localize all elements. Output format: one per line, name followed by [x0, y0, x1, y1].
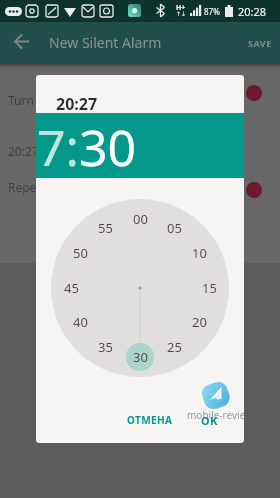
staticText: ОК	[201, 413, 219, 428]
staticText: 20:28	[238, 4, 267, 19]
staticText: 50	[73, 244, 88, 262]
staticText: 45	[64, 279, 79, 297]
staticText: New Silent Alarm	[49, 33, 162, 52]
button[interactable]: ОК	[191, 405, 229, 435]
staticText: ↑↓	[176, 10, 187, 17]
button[interactable]: ОТМЕНА	[110, 405, 190, 435]
staticText: 40	[73, 313, 88, 331]
staticText: ОТМЕНА	[127, 413, 173, 427]
staticText: 30	[133, 348, 148, 366]
button[interactable]: SAVE	[240, 22, 280, 63]
staticText: 20:27	[8, 143, 39, 159]
staticText: 25	[167, 338, 182, 356]
staticText: 20:27	[56, 93, 98, 115]
staticText: 15	[202, 279, 217, 297]
staticText: 87%	[204, 6, 220, 17]
staticText: 35	[98, 338, 113, 356]
staticText: 10	[192, 244, 207, 262]
staticText: mobile-review.com	[187, 408, 276, 422]
staticText: Repeat	[8, 179, 48, 195]
staticText: H+	[176, 3, 186, 13]
staticText: 05	[167, 219, 182, 237]
staticText: 55	[98, 219, 113, 237]
button[interactable]	[0, 22, 44, 63]
staticText: 20	[192, 313, 207, 331]
staticText: 7:30	[37, 113, 137, 178]
staticText: Turn alarm on	[8, 92, 88, 108]
staticText: 00	[133, 210, 148, 228]
staticText: SAVE	[248, 37, 272, 49]
